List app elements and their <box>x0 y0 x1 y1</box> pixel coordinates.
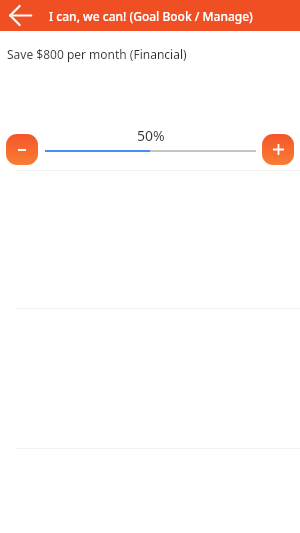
button[interactable]: Increase progress <box>262 134 294 165</box>
staticText: I can, we can! (Goal Book / Manage) <box>49 8 253 24</box>
staticText: Save $800 per month (Financial) <box>7 46 187 62</box>
button[interactable]: Decrease progress <box>6 134 38 165</box>
staticText: 50% <box>137 126 165 145</box>
button[interactable]: Back <box>0 0 40 31</box>
